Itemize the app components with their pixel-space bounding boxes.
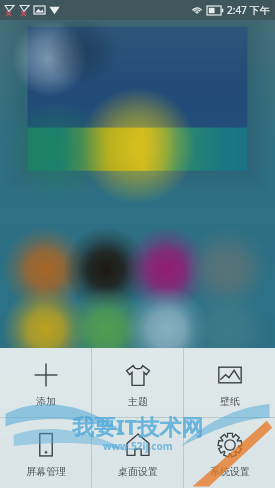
button[interactable]: 添加 [0, 348, 91, 417]
staticText: 壁纸 [220, 395, 240, 408]
button[interactable]: 主题 [92, 348, 183, 417]
staticText: 系统设置 [210, 465, 250, 478]
button[interactable]: 屏幕管理 [0, 418, 91, 488]
staticText: 2:47 下午 [227, 3, 270, 17]
staticText: 桌面设置 [118, 465, 158, 478]
staticText: 我要IT技术网 [72, 411, 204, 441]
button[interactable]: 壁纸 [184, 348, 275, 417]
staticText: 屏幕管理 [26, 465, 66, 478]
staticText: 主题 [128, 395, 148, 408]
button[interactable]: 系统设置 [184, 418, 275, 488]
staticText: www.52ij.com [103, 439, 173, 453]
staticText: 添加 [36, 395, 56, 408]
button[interactable]: 桌面设置 [92, 418, 183, 488]
